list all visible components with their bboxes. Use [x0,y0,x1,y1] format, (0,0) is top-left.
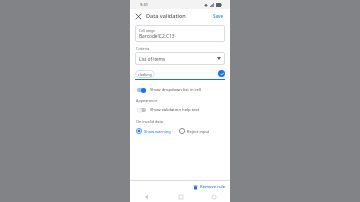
staticText: Reject input [187,129,210,134]
staticText: Cell range [139,28,156,33]
button[interactable]: Recents [197,192,230,202]
button[interactable]: Remove rule [189,183,230,191]
staticText: Barcode!C2:C13 [139,33,175,40]
button[interactable]: Back [130,192,164,202]
staticText: 9:41 [140,2,148,7]
button[interactable]: Reject input [178,127,211,135]
button[interactable]: Close [133,11,143,21]
button[interactable]: Save [211,12,226,20]
staticText: Save [213,13,224,19]
button[interactable]: List of items [135,52,225,65]
staticText: On invalid data [136,119,163,124]
staticText: Show dropdown list in cell [150,87,202,93]
staticText: Data validation [146,12,186,19]
staticText: clothing [138,72,152,77]
button[interactable]: Show validation help text [135,104,225,115]
button[interactable]: Confirm [218,70,225,77]
button[interactable]: Cell range [135,25,225,42]
staticText: List of items [139,56,166,62]
button[interactable]: Show warning [135,127,172,135]
staticText: Appearance [136,98,158,103]
staticText: Show warning [144,129,171,134]
staticText: Remove rule [200,184,226,190]
staticText: Criteria [136,46,150,51]
button[interactable]: Home [164,192,197,202]
button[interactable]: Show dropdown list in cell [135,84,225,95]
staticText: Show validation help text [150,107,200,113]
button[interactable]: clothing [135,68,225,79]
